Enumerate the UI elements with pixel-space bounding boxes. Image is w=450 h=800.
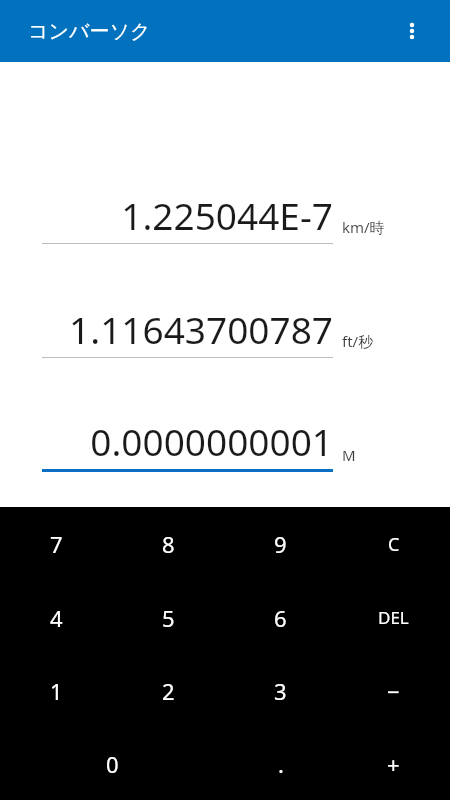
staticText: +: [387, 749, 400, 779]
button[interactable]: 1.225044E-7: [0, 130, 450, 244]
staticText: C: [388, 532, 400, 557]
staticText: 3: [274, 676, 287, 706]
button[interactable]: 1.11643700787: [0, 244, 450, 358]
button[interactable]: 1: [0, 654, 112, 727]
button[interactable]: Decimal point: [224, 727, 337, 800]
staticText: 2: [162, 676, 175, 706]
staticText: コンバーソク: [28, 19, 151, 44]
button[interactable]: 0.0000000001: [0, 358, 450, 472]
staticText: .: [278, 749, 284, 779]
button[interactable]: Minus: [337, 654, 450, 727]
button[interactable]: Delete: [337, 581, 450, 654]
button[interactable]: Clear: [337, 507, 450, 581]
button[interactable]: More options: [390, 9, 434, 53]
button[interactable]: 5: [112, 581, 224, 654]
staticText: DEL: [378, 606, 409, 629]
staticText: 4: [50, 603, 63, 633]
staticText: 7: [50, 529, 63, 559]
staticText: 1.225044E-7: [42, 190, 333, 240]
button[interactable]: 6: [224, 581, 337, 654]
button[interactable]: 0: [0, 727, 224, 800]
staticText: km/時: [342, 217, 385, 237]
staticText: 0.0000000001: [42, 416, 333, 466]
button[interactable]: 7: [0, 507, 112, 581]
button[interactable]: 3: [224, 654, 337, 727]
staticText: ft/秒: [342, 331, 374, 351]
button[interactable]: 8: [112, 507, 224, 581]
staticText: 1.11643700787: [42, 304, 333, 354]
staticText: 9: [274, 529, 287, 559]
staticText: 5: [162, 603, 175, 633]
button[interactable]: 4: [0, 581, 112, 654]
staticText: 6: [274, 603, 287, 633]
button[interactable]: 2: [112, 654, 224, 727]
staticText: 0: [106, 749, 119, 779]
staticText: −: [387, 676, 400, 706]
staticText: 8: [162, 529, 175, 559]
button[interactable]: 9: [224, 507, 337, 581]
staticText: 1: [50, 676, 63, 706]
button[interactable]: Plus: [337, 727, 450, 800]
staticText: M: [342, 445, 356, 465]
